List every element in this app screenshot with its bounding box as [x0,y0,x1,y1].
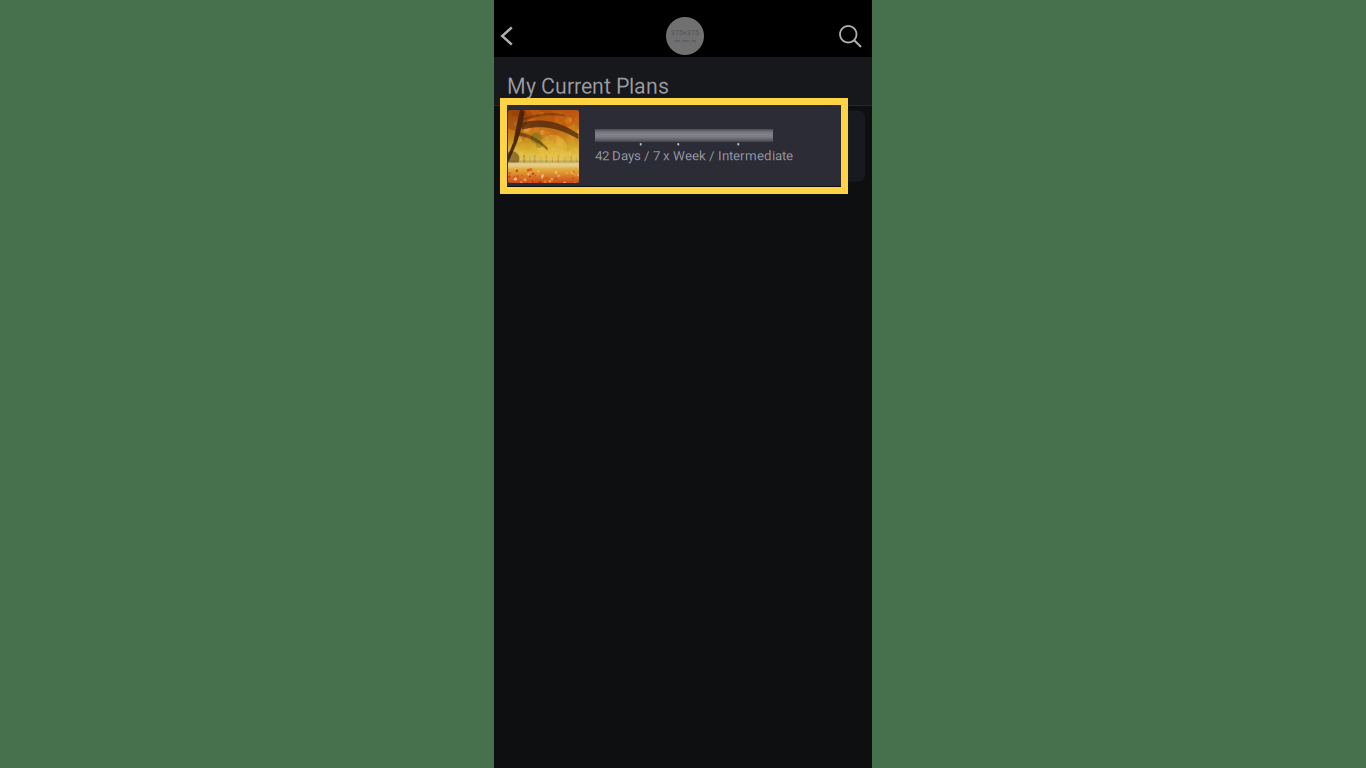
staticText: 42 Days / 7 x Week / Intermediate [595,148,793,164]
staticText: My Current Plans [507,74,669,99]
button[interactable]: Search [833,16,869,58]
button[interactable]: 42 Days / 7 x Week / Intermediate [507,104,841,186]
button[interactable]: Profile picture [661,15,709,57]
staticText: 375×375 [671,29,699,37]
staticText: one_item.org [674,38,696,43]
button[interactable]: Back [490,15,524,57]
